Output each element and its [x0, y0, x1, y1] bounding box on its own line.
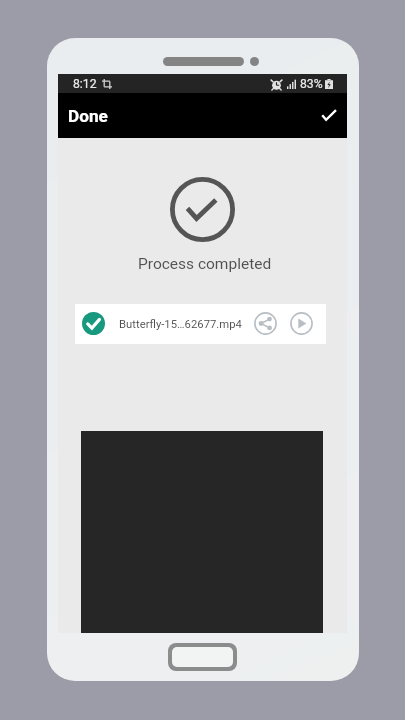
- staticText: Done: [68, 106, 108, 126]
- button[interactable]: Confirm: [311, 98, 347, 134]
- button[interactable]: Share: [252, 310, 279, 337]
- staticText: 83%: [300, 77, 323, 91]
- button[interactable]: Butterfly-15…62677.mp4: [75, 304, 326, 344]
- button[interactable]: Play: [288, 310, 315, 337]
- staticText: Butterfly-15…62677.mp4: [119, 318, 242, 331]
- staticText: 8:12: [73, 77, 97, 91]
- button[interactable]: Home: [168, 643, 237, 671]
- staticText: Process completed: [138, 255, 272, 273]
